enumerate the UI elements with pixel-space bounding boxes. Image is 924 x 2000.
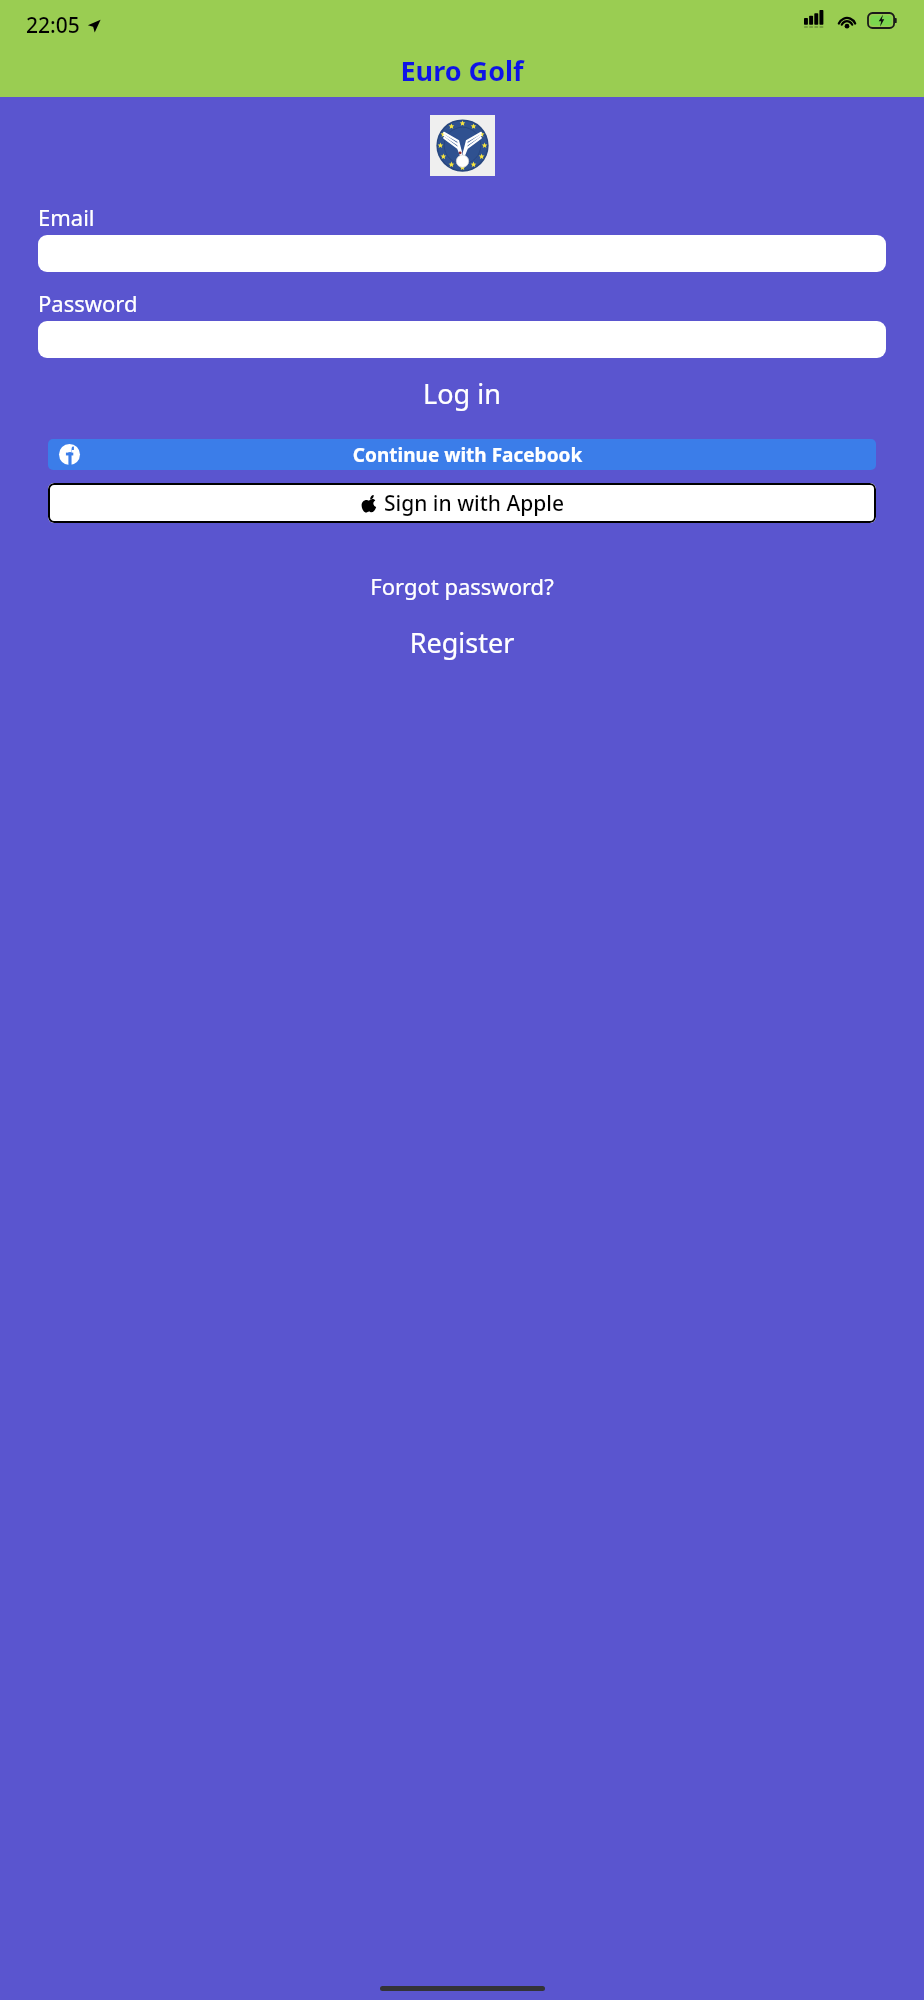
staticText: Password [38,288,138,318]
staticText: Forgot password? [0,571,924,601]
button[interactable]: Email [38,235,886,272]
staticText: Sign in with Apple [384,489,564,518]
staticText: Register [0,624,924,661]
button[interactable]: Log in [0,375,924,412]
staticText: Log in [0,375,924,412]
staticText: Continue with Facebook [80,442,855,468]
button[interactable]: Password [38,321,886,358]
button[interactable]: Continue with Facebook [48,439,876,470]
staticText: Euro Golf [0,52,924,89]
button[interactable]: Register [0,624,924,661]
button[interactable]: Sign in with Apple [48,483,876,523]
staticText: 22:05 [26,11,80,40]
staticText: Email [38,202,95,232]
button[interactable]: Forgot password? [0,571,924,601]
